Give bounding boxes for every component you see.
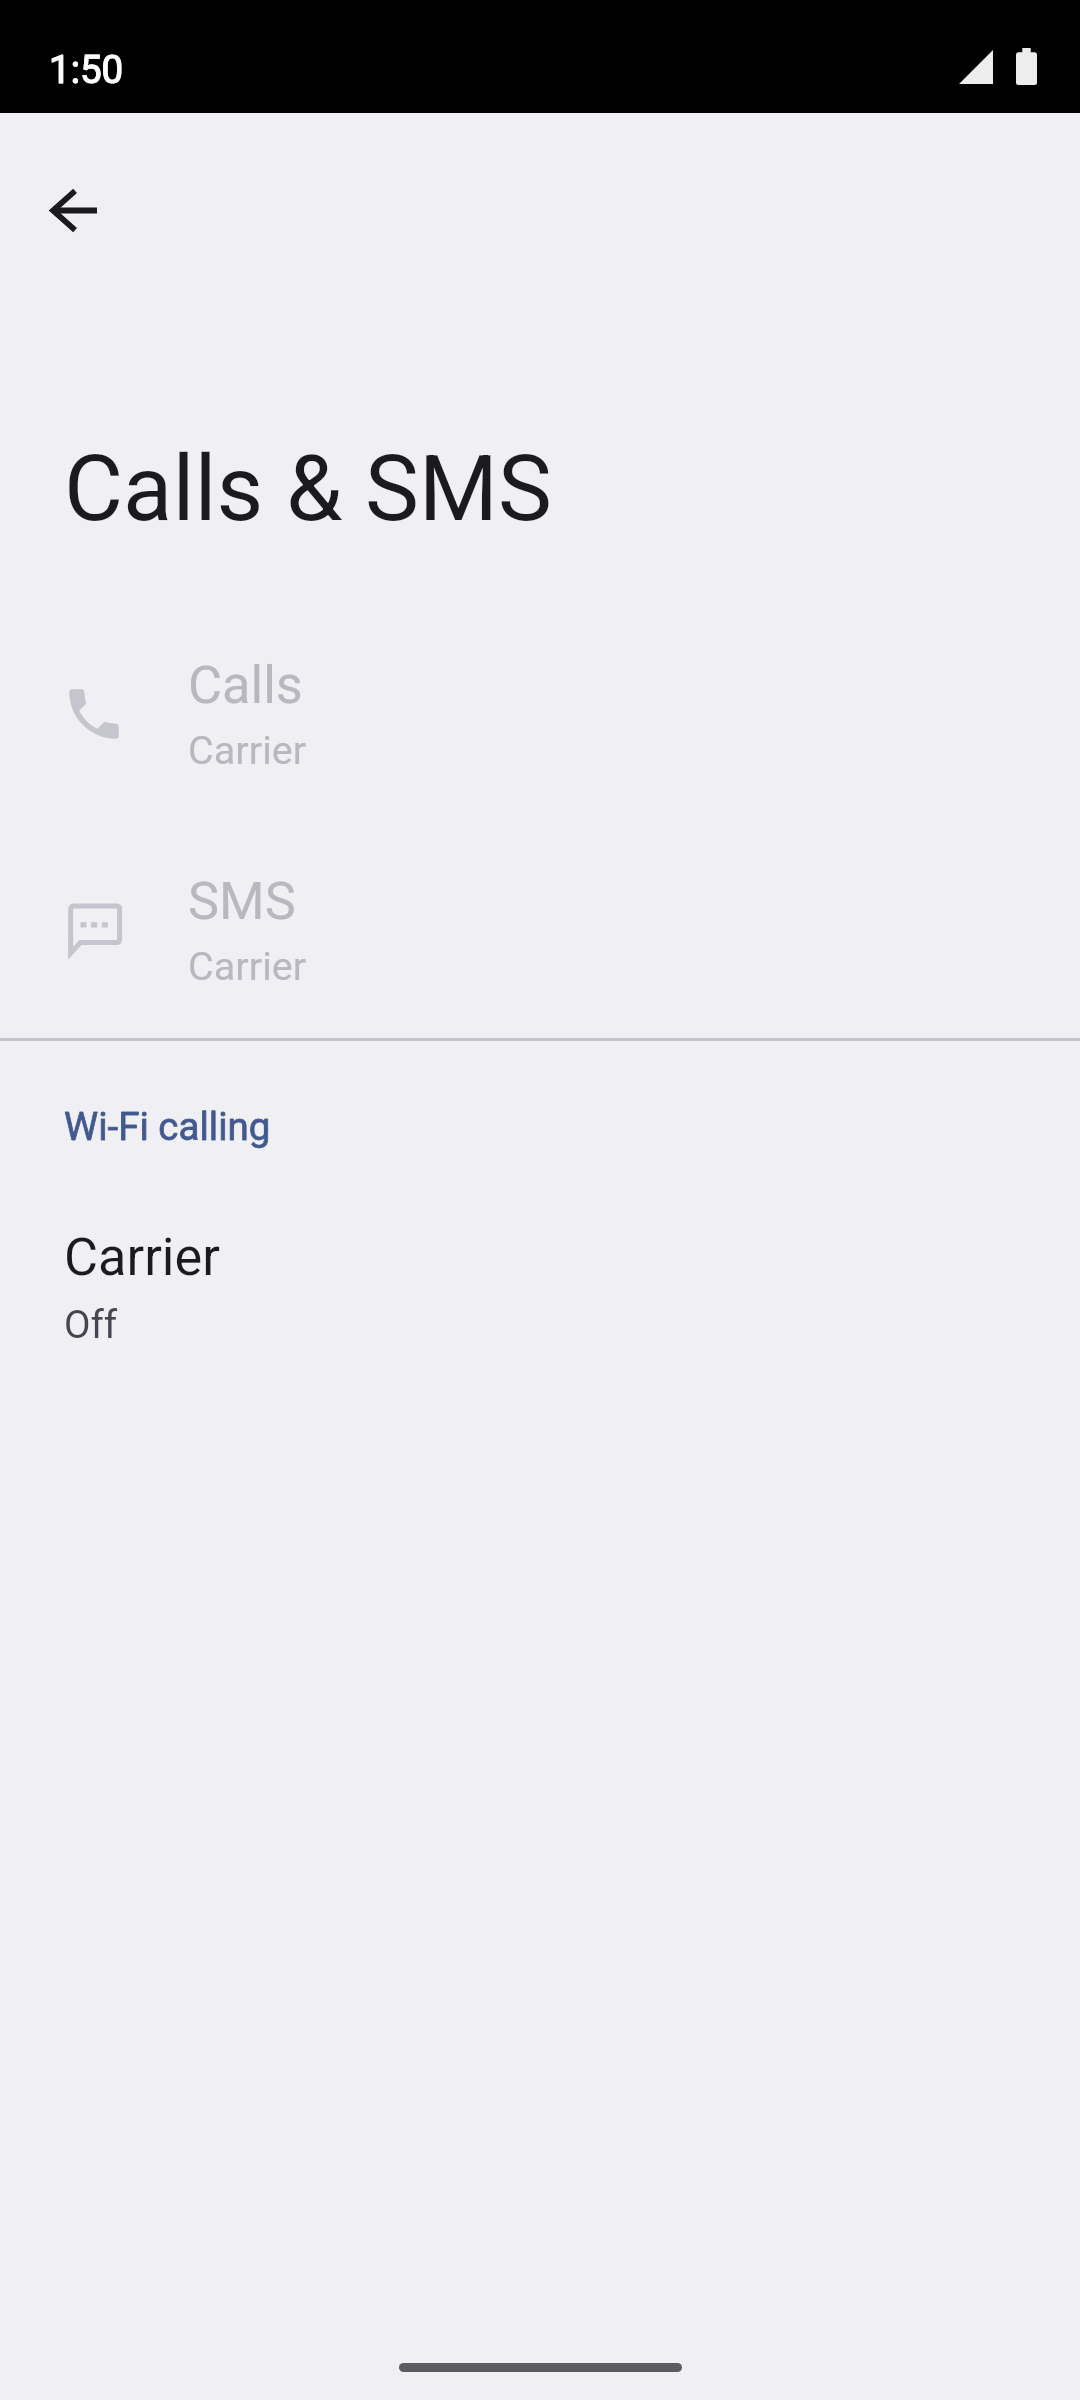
button[interactable]: Back: [9, 144, 141, 276]
staticText: Carrier: [188, 727, 307, 773]
staticText: Carrier: [64, 1227, 220, 1288]
staticText: 1:50: [49, 47, 124, 92]
staticText: Off: [64, 1302, 118, 1347]
staticText: Carrier: [188, 943, 307, 989]
button[interactable]: SMS: [0, 831, 1080, 1029]
staticText: 1:50: [49, 47, 124, 92]
staticText: Calls: [188, 655, 303, 716]
staticText: Wi-Fi calling: [64, 1104, 271, 1149]
staticText: SMS: [188, 871, 296, 932]
button[interactable]: Carrier: [0, 1208, 1080, 1380]
button[interactable]: Calls: [0, 615, 1080, 813]
staticText: Calls & SMS: [64, 436, 552, 542]
staticText: Wi-Fi calling: [64, 1104, 271, 1149]
